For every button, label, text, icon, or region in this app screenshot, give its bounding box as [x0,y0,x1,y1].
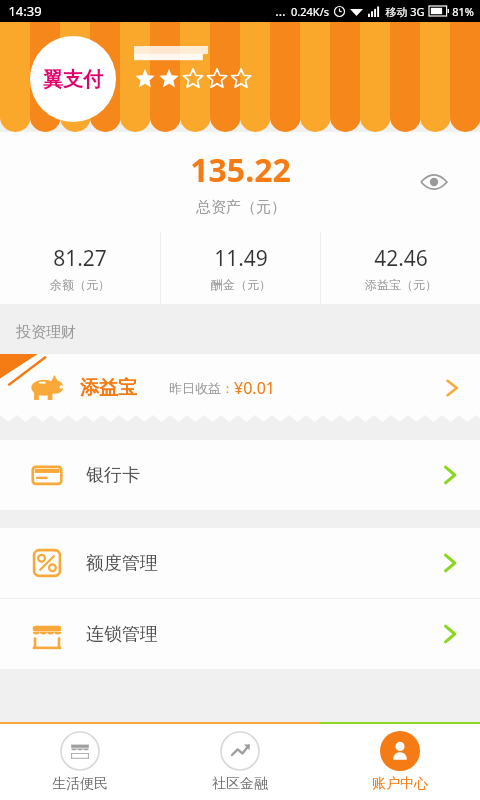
button[interactable]: 显示或隐藏金额 [414,162,454,202]
staticText: 生活便民 [52,775,108,793]
staticText: 社区金融 [212,775,268,793]
button[interactable]: 11.49 [161,232,320,304]
button[interactable]: 银行卡 [0,440,480,510]
button[interactable]: 社区金融 [160,724,320,800]
button[interactable]: 添益宝 [0,354,480,422]
staticText: 酬金（元） [211,277,271,292]
staticText: … [275,2,286,20]
staticText: 余额（元） [50,277,110,292]
staticText: 81.27 [53,244,107,273]
staticText: 银行卡 [86,464,140,487]
staticText: 添益宝（元） [365,277,437,292]
staticText: 翼支付 [43,67,103,92]
staticText: 移动 3G [385,4,425,19]
staticText: ¥0.01 [234,377,275,399]
staticText: 账户中心 [372,775,428,793]
staticText: 81% [452,4,474,19]
button[interactable]: 翼支付 [30,36,116,122]
staticText: 11.49 [214,244,268,273]
staticText: 连锁管理 [86,623,158,646]
button[interactable]: 账户中心 [320,724,480,800]
staticText: 14:39 [8,2,42,20]
staticText: 总资产（元） [196,198,286,217]
button[interactable]: 42.46 [321,232,480,304]
button[interactable]: 额度管理 [0,528,480,598]
staticText: 昨日收益： [169,380,234,396]
staticText: 135.22 [190,148,291,192]
button[interactable]: 81.27 [0,232,160,304]
staticText: 添益宝 [80,376,137,400]
staticText: 额度管理 [86,552,158,575]
button[interactable]: 生活便民 [0,724,160,800]
button[interactable]: 连锁管理 [0,599,480,669]
staticText: 投资理财 [16,323,76,342]
staticText: 0.24K/s [291,4,329,19]
staticText: 42.46 [374,244,428,273]
